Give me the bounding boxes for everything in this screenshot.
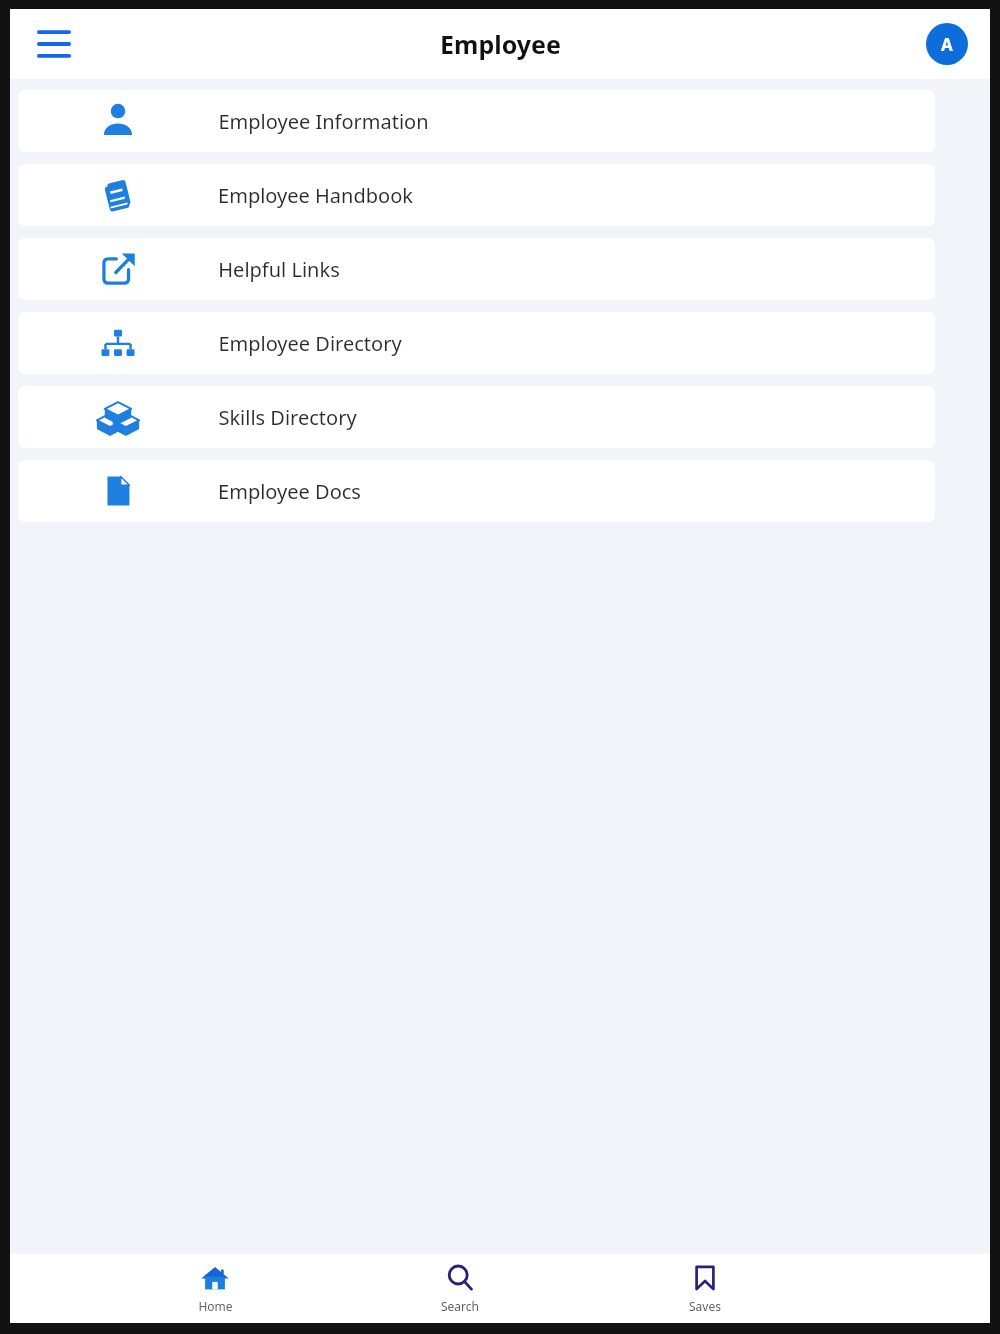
button[interactable]: Employee Directory (18, 312, 935, 374)
staticText: Employee Directory (218, 330, 402, 357)
staticText: Employee (440, 27, 561, 61)
staticText: Helpful Links (218, 256, 340, 283)
staticText: Saves (689, 1298, 721, 1314)
staticText: Search (441, 1298, 479, 1314)
staticText: A (941, 33, 953, 56)
button[interactable]: Helpful Links (18, 238, 935, 300)
button[interactable]: Home (160, 1254, 270, 1323)
button[interactable]: Saves (650, 1254, 760, 1323)
button[interactable]: Menu (28, 18, 80, 70)
button[interactable]: Skills Directory (18, 386, 935, 448)
button[interactable]: Employee Docs (18, 460, 935, 522)
button[interactable]: Search (405, 1254, 515, 1323)
staticText: Employee Docs (218, 478, 361, 505)
staticText: Employee Handbook (218, 182, 413, 209)
staticText: Home (198, 1298, 233, 1314)
button[interactable]: Employee Handbook (18, 164, 935, 226)
staticText: Employee Information (218, 108, 429, 135)
staticText: Skills Directory (218, 404, 357, 431)
button[interactable]: Account (926, 23, 968, 65)
button[interactable]: Employee Information (18, 90, 935, 152)
